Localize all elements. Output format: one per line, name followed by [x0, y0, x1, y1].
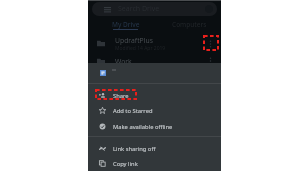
- other: Menu: [104, 7, 111, 12]
- button[interactable]: More options: [203, 54, 217, 68]
- staticText: UpdraftPlus: [115, 36, 153, 45]
- button[interactable]: Work: [88, 53, 221, 69]
- staticText: Search Drive: [118, 4, 160, 14]
- staticText: My Drive: [112, 20, 140, 29]
- button[interactable]: More options: [203, 37, 217, 51]
- button[interactable]: My Drive: [94, 19, 157, 30]
- button[interactable]: Copy link: [88, 156, 221, 171]
- staticText: Computers: [172, 20, 207, 29]
- staticText: Copy link: [113, 160, 138, 168]
- button[interactable]: Computers: [157, 19, 221, 30]
- button[interactable]: Share: [88, 88, 221, 103]
- staticText: Share: [113, 92, 129, 100]
- staticText: Make available offline: [113, 123, 173, 131]
- staticText: Work: [115, 57, 132, 66]
- button[interactable]: Make available offline: [88, 119, 221, 134]
- button[interactable]: Menu: [92, 2, 217, 16]
- staticText: Add to Starred: [113, 107, 153, 115]
- button[interactable]: UpdraftPlus: [88, 34, 221, 53]
- button[interactable]: Add to Starred: [88, 103, 221, 118]
- button[interactable]: Link sharing off: [88, 141, 221, 156]
- staticText: Modified 14 Apr 2019: [115, 45, 166, 52]
- staticText: Link sharing off: [113, 145, 156, 153]
